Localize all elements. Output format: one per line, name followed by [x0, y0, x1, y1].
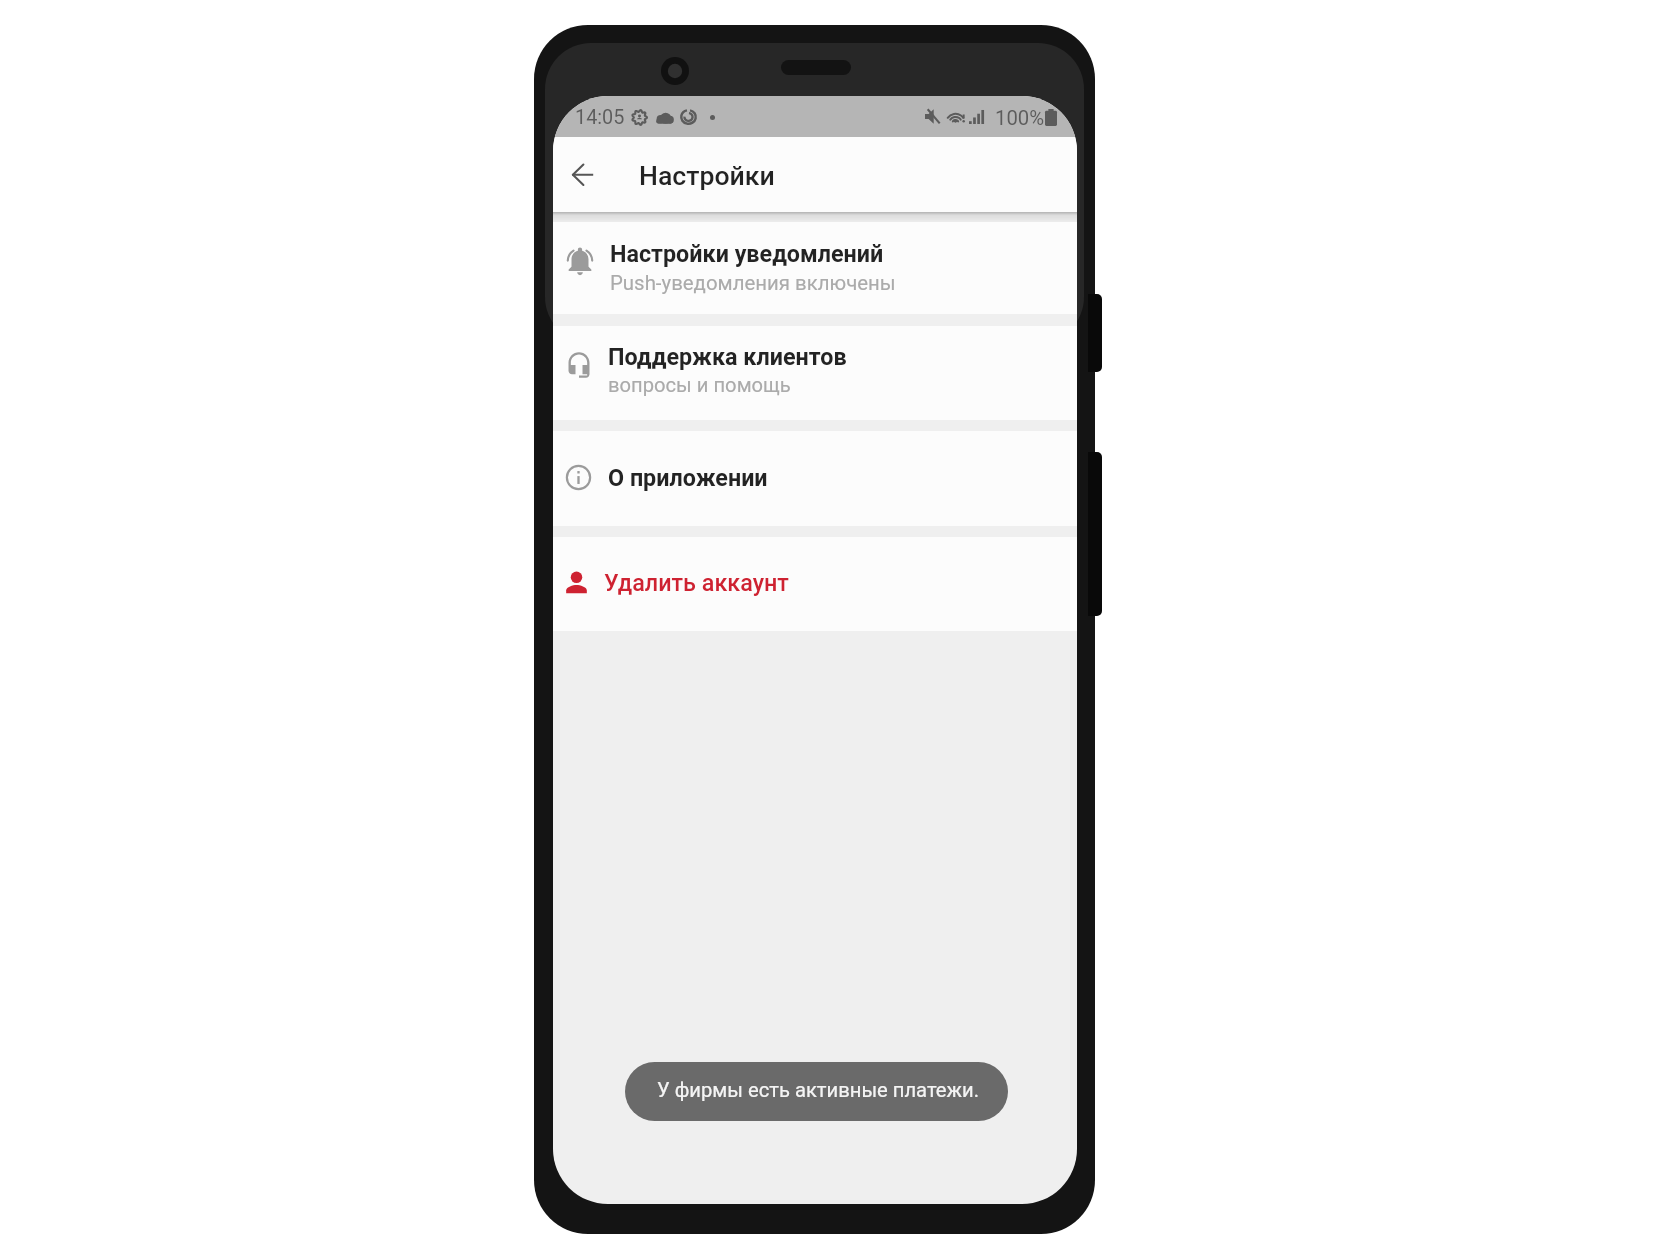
button[interactable]: Назад [554, 147, 611, 192]
staticText: Удалить аккаунт [604, 569, 789, 596]
staticText: Настройки уведомлений [610, 240, 884, 267]
button[interactable]: Удалить аккаунт [553, 537, 1077, 631]
button[interactable]: О приложении [553, 431, 1077, 526]
staticText: У фирмы есть активные платежи. [657, 1078, 979, 1102]
staticText: Поддержка клиентов [608, 343, 847, 370]
button[interactable]: Настройки уведомлений [553, 222, 1077, 314]
staticText: 14:05 [575, 106, 625, 129]
staticText: Настройки [639, 160, 775, 191]
button[interactable]: Поддержка клиентов [553, 326, 1077, 420]
staticText: вопросы и помощь [608, 373, 791, 397]
staticText: О приложении [608, 464, 768, 491]
staticText: 100% [995, 106, 1045, 130]
staticText: Push-уведомления включены [610, 271, 896, 295]
